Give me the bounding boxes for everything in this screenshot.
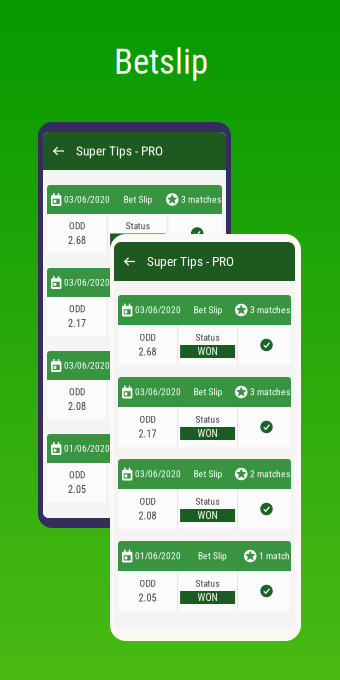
button[interactable]: 03/06/2020 xyxy=(47,185,222,253)
staticText: WON xyxy=(128,234,148,246)
staticText: WON xyxy=(198,345,218,357)
staticText: Bet Slip xyxy=(123,360,152,371)
staticText: 03/06/2020 xyxy=(64,277,110,288)
staticText: ODD xyxy=(140,578,156,589)
button[interactable]: 03/06/2020 xyxy=(47,268,222,336)
staticText: ODD xyxy=(140,414,156,425)
staticText: 2.17 xyxy=(139,428,157,440)
staticText: 3 matches xyxy=(181,277,221,288)
staticText: Status xyxy=(126,469,150,480)
staticText: 2 matches xyxy=(250,468,290,480)
staticText: Status xyxy=(196,578,220,589)
staticText: Bet Slip xyxy=(193,468,222,480)
staticText: 2.17 xyxy=(68,317,86,329)
staticText: 1 match xyxy=(259,550,290,562)
staticText: 3 matches xyxy=(181,194,221,205)
staticText: Status xyxy=(196,496,220,507)
button[interactable]: 01/06/2020 xyxy=(118,541,291,611)
staticText: Status xyxy=(126,220,150,231)
staticText: 01/06/2020 xyxy=(135,550,181,561)
staticText: 2.05 xyxy=(139,592,157,604)
staticText: 03/06/2020 xyxy=(64,194,110,205)
staticText: 3 matches xyxy=(250,304,290,316)
staticText: 2 matches xyxy=(181,443,221,454)
staticText: 03/06/2020 xyxy=(135,386,181,397)
staticText: ODD xyxy=(140,496,156,507)
button[interactable]: 03/06/2020 xyxy=(47,351,222,419)
staticText: ODD xyxy=(140,332,156,343)
staticText: Super Tips - PRO xyxy=(76,143,163,159)
staticText: Bet Slip xyxy=(123,277,152,288)
staticText: 2.05 xyxy=(68,483,86,495)
staticText: Bet Slip xyxy=(193,304,222,316)
staticText: Status xyxy=(196,414,220,425)
staticText: 2.68 xyxy=(139,346,157,358)
staticText: 2.08 xyxy=(68,400,86,412)
staticText: 3 matches xyxy=(250,386,290,398)
staticText: Bet Slip xyxy=(198,550,227,562)
staticText: Status xyxy=(196,332,220,343)
staticText: WON xyxy=(198,427,218,439)
button[interactable]: Back xyxy=(114,242,139,281)
staticText: 2.08 xyxy=(139,510,157,522)
staticText: Status xyxy=(126,303,150,314)
staticText: ODD xyxy=(69,304,85,314)
staticText: Super Tips - PRO xyxy=(147,254,234,269)
button[interactable]: 03/06/2020 xyxy=(118,295,291,365)
staticText: Bet Slip xyxy=(123,194,152,205)
staticText: WON xyxy=(198,509,218,521)
staticText: 03/06/2020 xyxy=(135,468,181,479)
staticText: 3 matches xyxy=(181,360,221,371)
staticText: ODD xyxy=(69,221,85,231)
staticText: 01/06/2020 xyxy=(64,443,110,454)
staticText: 03/06/2020 xyxy=(64,360,110,371)
button[interactable]: 03/06/2020 xyxy=(118,459,291,529)
staticText: Bet Slip xyxy=(193,386,222,398)
staticText: ODD xyxy=(69,387,85,397)
staticText: Status xyxy=(126,386,150,397)
button[interactable]: Back xyxy=(43,132,68,170)
staticText: 2.68 xyxy=(68,234,86,246)
staticText: Betslip xyxy=(114,42,208,82)
staticText: WON xyxy=(128,400,148,412)
staticText: WON xyxy=(128,483,148,495)
button[interactable]: 03/06/2020 xyxy=(118,377,291,447)
button[interactable]: 01/06/2020 xyxy=(47,434,222,502)
staticText: WON xyxy=(198,591,218,603)
staticText: Bet Slip xyxy=(123,443,152,454)
staticText: 03/06/2020 xyxy=(135,304,181,315)
staticText: WON xyxy=(128,317,148,329)
staticText: ODD xyxy=(69,470,85,480)
